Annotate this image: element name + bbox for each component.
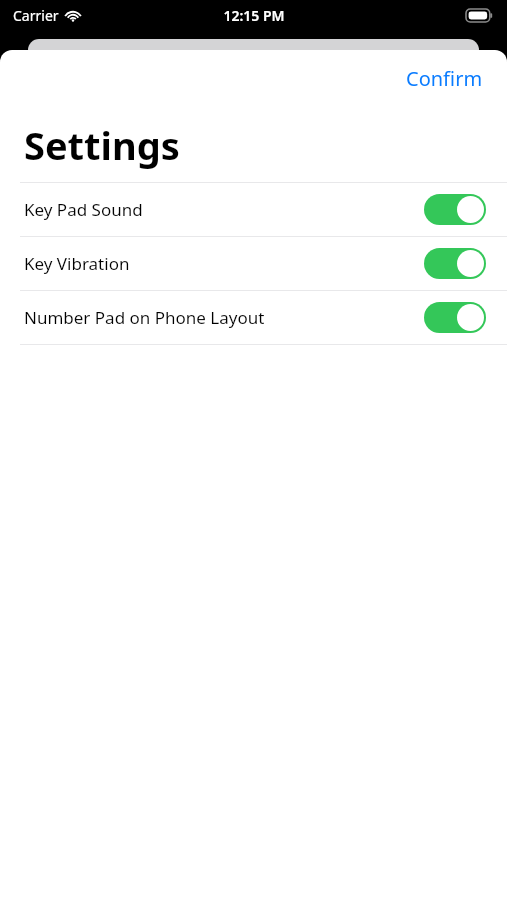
button[interactable]: Toggle on xyxy=(424,194,486,225)
button[interactable]: Key Vibration xyxy=(0,237,507,290)
staticText: Number Pad on Phone Layout xyxy=(24,306,424,329)
staticText: Key Pad Sound xyxy=(24,198,424,221)
button[interactable]: Confirm xyxy=(390,57,499,100)
staticText: Key Vibration xyxy=(24,252,424,275)
staticText: 12:15 PM xyxy=(223,6,285,25)
button[interactable]: Toggle on xyxy=(424,302,486,333)
staticText: Carrier xyxy=(13,6,59,25)
staticText: Confirm xyxy=(406,65,483,92)
staticText: Settings xyxy=(24,119,180,171)
button[interactable]: Number Pad on Phone Layout xyxy=(0,291,507,344)
button[interactable]: Key Pad Sound xyxy=(0,183,507,236)
button[interactable]: Toggle on xyxy=(424,248,486,279)
